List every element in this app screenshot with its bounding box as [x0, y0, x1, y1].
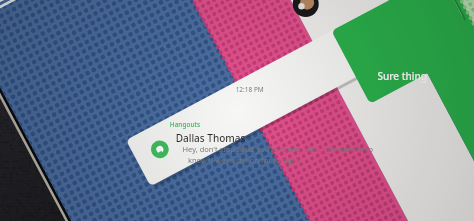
button[interactable]: Phone showing Hangouts notification: [0, 0, 474, 221]
